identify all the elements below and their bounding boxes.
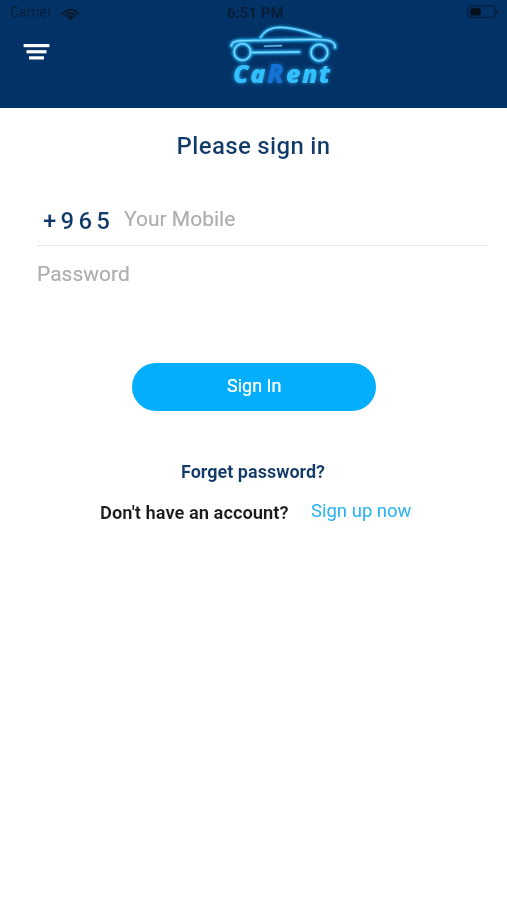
staticText: +965 (43, 207, 115, 235)
button[interactable]: Sign In (132, 363, 376, 411)
staticText: Forget password? (181, 461, 326, 482)
button[interactable]: Forget password? (171, 457, 336, 486)
staticText: Sign In (227, 375, 282, 396)
staticText: 6:51 PM (227, 4, 284, 22)
staticText: Your Mobile (124, 207, 236, 232)
staticText: Ca (233, 56, 267, 90)
staticText: Carrier (10, 4, 52, 20)
button[interactable]: Sign up now (305, 496, 418, 526)
staticText: Ca (233, 56, 267, 90)
staticText: Password (37, 262, 130, 287)
staticText: R (267, 55, 286, 90)
staticText: ent (286, 56, 332, 90)
staticText: Please sign in (0, 132, 507, 160)
staticText: Don't have an account? (100, 502, 289, 523)
staticText: R (267, 55, 286, 90)
button[interactable]: Menu (14, 21, 61, 68)
staticText: Sign up now (311, 500, 412, 522)
staticText: ent (286, 56, 332, 90)
